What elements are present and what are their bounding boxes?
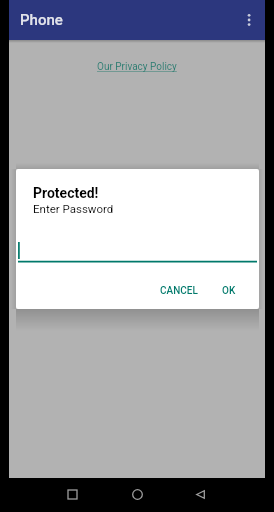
button[interactable]: Recent apps — [58, 480, 87, 509]
staticText: Phone — [20, 11, 63, 29]
staticText: CANCEL — [160, 285, 198, 297]
staticText: OK — [222, 285, 236, 297]
button[interactable]: Back — [186, 480, 215, 509]
staticText: Enter Password — [33, 202, 114, 215]
button[interactable]: CANCEL — [153, 279, 205, 303]
button[interactable]: OK — [215, 279, 243, 303]
button[interactable]: Home — [123, 480, 152, 509]
button[interactable]: Our Privacy Policy — [97, 61, 177, 73]
staticText: Our Privacy Policy — [97, 61, 177, 73]
staticText: Protected! — [33, 185, 99, 201]
button[interactable]: More options — [233, 4, 265, 36]
